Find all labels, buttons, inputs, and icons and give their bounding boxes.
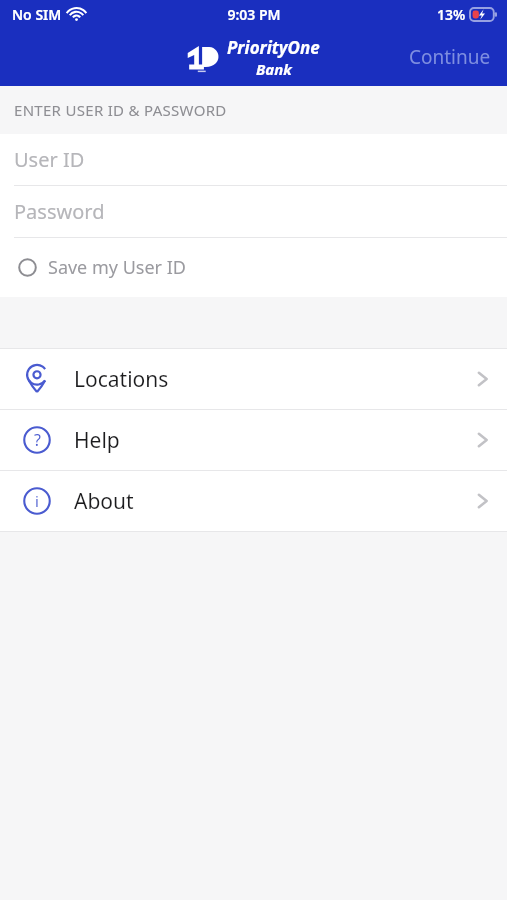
staticText: About: [74, 487, 134, 516]
button[interactable]: Locations: [0, 349, 507, 409]
staticText: PriorityOne: [227, 36, 320, 59]
staticText: ENTER USER ID & PASSWORD: [14, 100, 227, 120]
staticText: Password: [14, 198, 105, 225]
staticText: Locations: [74, 365, 169, 394]
staticText: Bank: [256, 59, 292, 79]
staticText: Continue: [409, 44, 491, 70]
staticText: Help: [74, 426, 120, 455]
button[interactable]: Save my User ID: [0, 238, 507, 297]
staticText: Save my User ID: [48, 255, 186, 280]
button[interactable]: Password: [0, 186, 507, 237]
other: Open: [476, 368, 489, 390]
staticText: i: [35, 491, 39, 511]
other: Open: [476, 429, 489, 451]
button[interactable]: i: [0, 471, 507, 531]
other: Open: [476, 490, 489, 512]
staticText: ?: [34, 429, 41, 451]
button[interactable]: ?: [0, 410, 507, 470]
staticText: No SIM: [12, 5, 62, 24]
staticText: 9:03 PM: [227, 5, 281, 24]
staticText: 13%: [437, 5, 466, 24]
button[interactable]: Continue: [393, 34, 507, 80]
button[interactable]: User ID: [0, 134, 507, 185]
staticText: User ID: [14, 146, 85, 173]
